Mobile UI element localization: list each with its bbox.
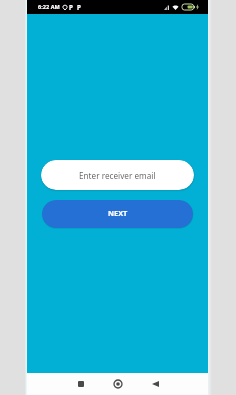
staticText: NEXT (108, 208, 128, 218)
staticText: Enter receiver email (79, 170, 156, 181)
button[interactable]: Recents (69, 373, 93, 395)
button[interactable]: Back (143, 373, 167, 395)
staticText: 6:22 AM (38, 3, 60, 11)
button[interactable]: Enter receiver email (41, 160, 194, 190)
button[interactable]: NEXT (42, 200, 193, 228)
button[interactable]: Home (106, 373, 130, 395)
staticText: P (77, 3, 81, 11)
staticText: P (69, 3, 73, 11)
